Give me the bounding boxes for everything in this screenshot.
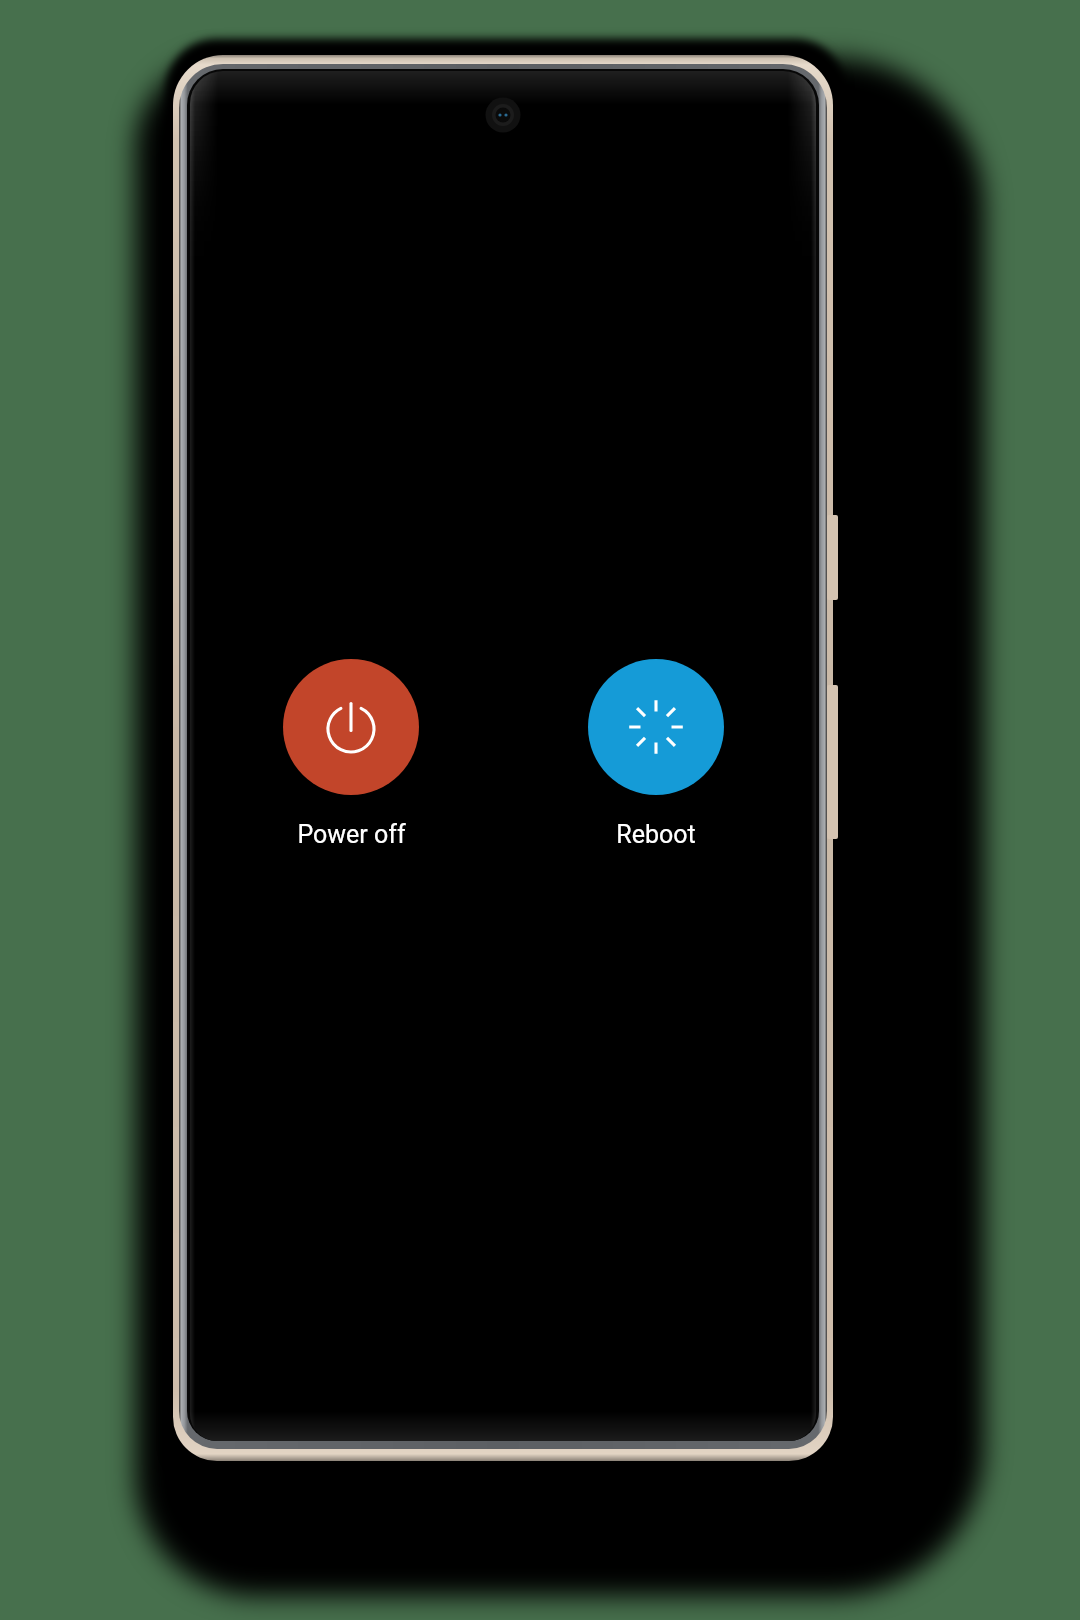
staticText: Reboot [616,820,696,849]
button[interactable]: Reboot [588,659,724,849]
button[interactable]: Power button [827,515,838,600]
button[interactable]: Power off [283,659,419,849]
button[interactable]: Volume button [827,685,838,839]
staticText: Power off [297,820,406,849]
